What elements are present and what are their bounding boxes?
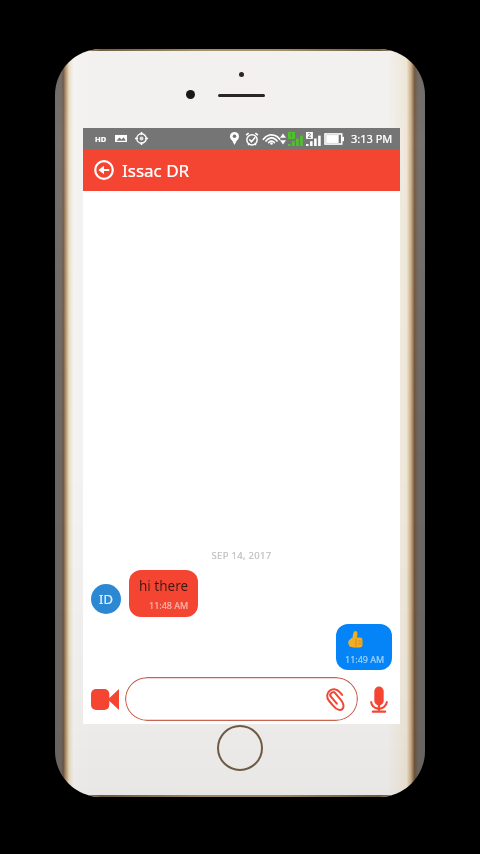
staticText: 3:13 PM: [351, 131, 393, 146]
staticText: 11:49 AM: [345, 653, 385, 665]
button[interactable]: Contact avatar: [91, 584, 121, 614]
button[interactable]: Attach: [324, 687, 348, 711]
staticText: 11:48 AM: [149, 599, 189, 611]
button[interactable]: Attach: [125, 677, 358, 721]
staticText: Issac DR: [122, 159, 190, 182]
staticText: hi there: [139, 577, 189, 595]
button[interactable]: hi there: [129, 570, 198, 617]
button[interactable]: Voice message: [365, 685, 393, 713]
button[interactable]: Back: [91, 157, 117, 183]
button[interactable]: Video call: [90, 684, 120, 714]
staticText: HD: [95, 134, 107, 144]
staticText: SEP 14, 2017: [83, 549, 400, 562]
button[interactable]: 11:49 AM: [336, 624, 392, 670]
staticText: ID: [99, 590, 113, 608]
